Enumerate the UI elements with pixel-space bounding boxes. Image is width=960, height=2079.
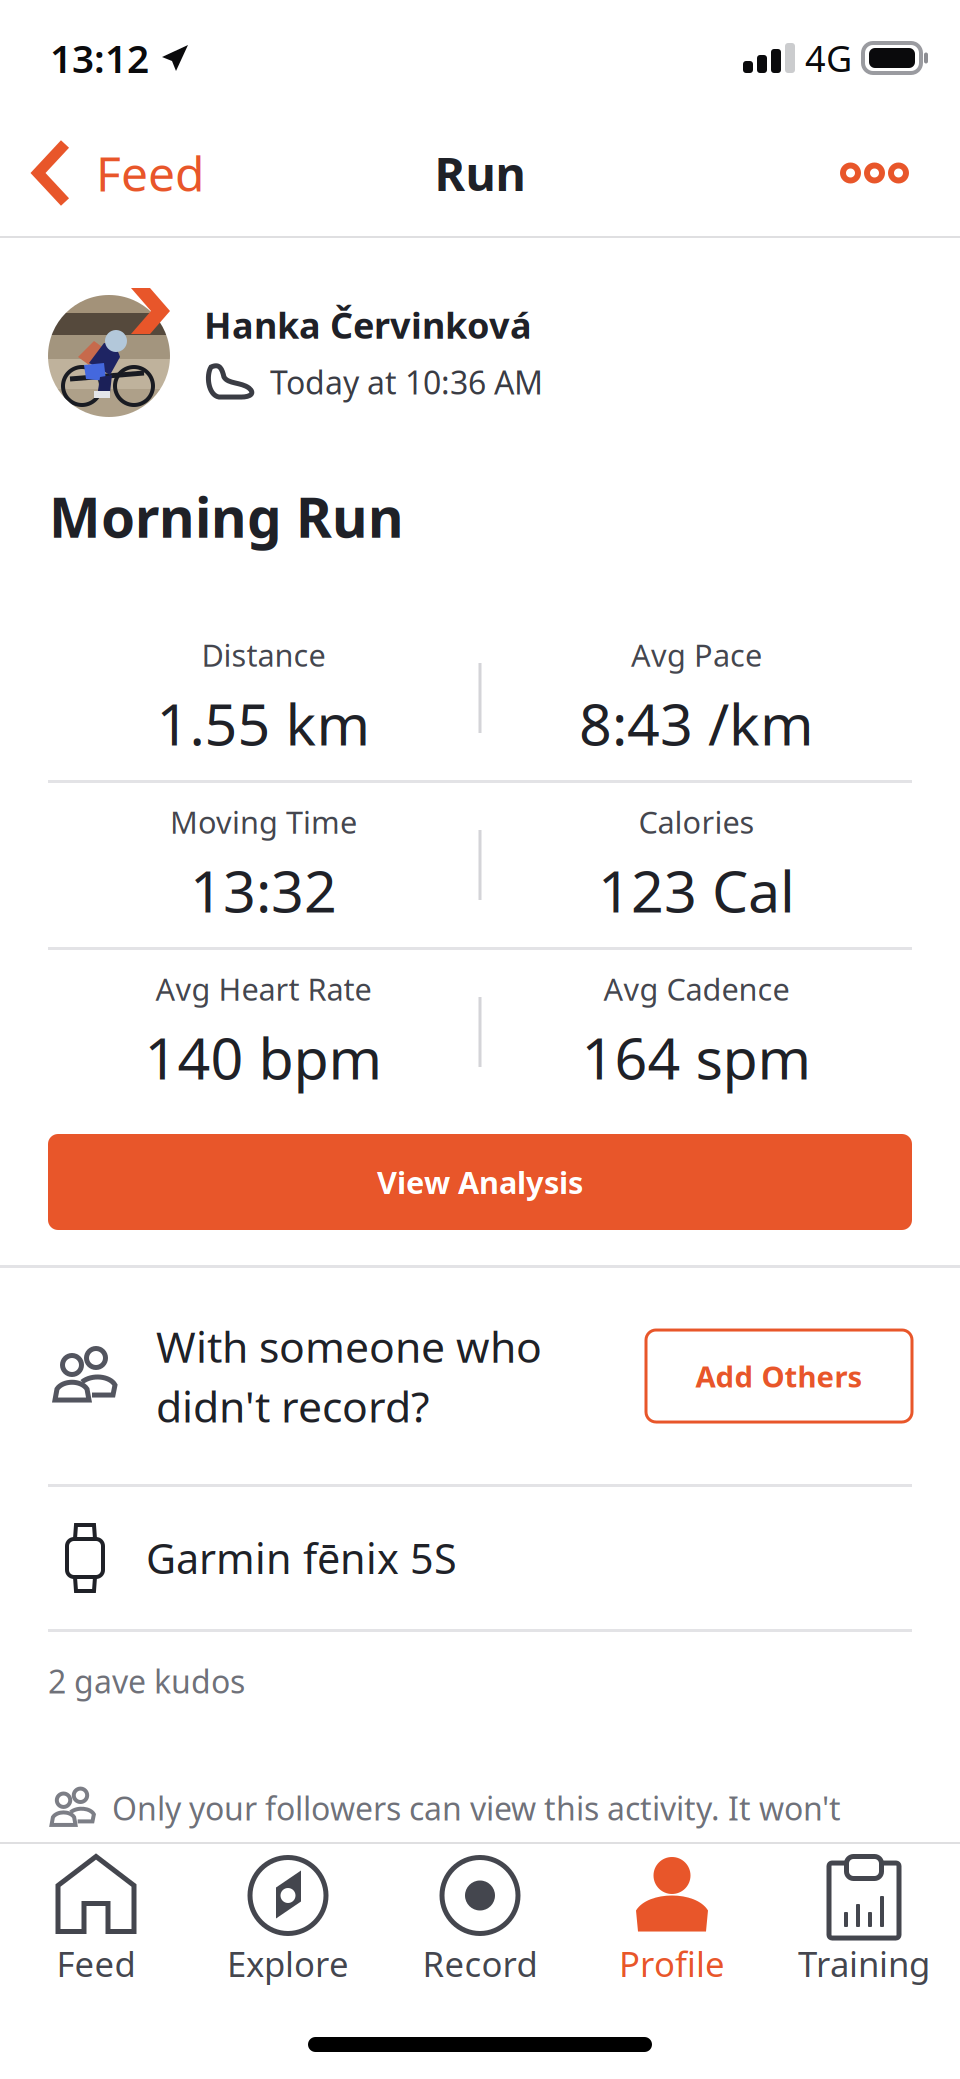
button[interactable]: Profile <box>576 1841 768 2001</box>
staticText: 1.55 km <box>156 685 370 761</box>
button[interactable]: Explore <box>192 1841 384 2001</box>
button[interactable]: Training <box>768 1841 960 2001</box>
staticText: 164 spm <box>581 1019 811 1095</box>
staticText: 140 bpm <box>144 1019 382 1095</box>
staticText: 2 gave kudos <box>48 1660 245 1702</box>
button[interactable]: Record <box>384 1841 576 2001</box>
staticText: View Analysis <box>377 1162 583 1202</box>
staticText: Explore <box>227 1940 349 1986</box>
staticText: 8:43 /km <box>579 685 814 761</box>
staticText: Hanka Červinková <box>204 301 532 349</box>
staticText: Training <box>798 1940 930 1986</box>
staticText: Feed <box>56 1940 135 1986</box>
staticText: Only your followers can view this activi… <box>112 1787 841 1829</box>
button[interactable]: More options <box>803 129 960 216</box>
staticText: Feed <box>96 141 205 205</box>
staticText: 13:32 <box>190 852 337 928</box>
staticText: Avg Pace <box>631 635 762 675</box>
staticText: 123 Cal <box>598 852 795 928</box>
staticText: With someone who <box>156 1318 542 1374</box>
button[interactable]: Feed <box>0 1841 192 2001</box>
button[interactable]: Feed <box>0 121 205 225</box>
staticText: Morning Run <box>49 480 404 553</box>
staticText: Today at 10:36 AM <box>270 361 543 403</box>
staticText: Garmin fēnix 5S <box>146 1531 457 1585</box>
button[interactable]: View Analysis <box>48 1134 912 1230</box>
staticText: Profile <box>619 1940 725 1986</box>
staticText: Calories <box>638 802 754 842</box>
staticText: didn't record? <box>156 1377 430 1434</box>
staticText: Add Others <box>695 1356 862 1395</box>
staticText: Moving Time <box>170 802 357 842</box>
staticText: Record <box>422 1940 537 1986</box>
staticText: Distance <box>201 635 325 675</box>
staticText: Avg Heart Rate <box>155 969 371 1009</box>
staticText: Avg Cadence <box>603 969 789 1009</box>
staticText: Run <box>434 142 525 204</box>
staticText: 4G <box>805 34 852 82</box>
staticText: 13:12 <box>50 32 149 84</box>
button[interactable]: Add Others <box>646 1330 912 1422</box>
